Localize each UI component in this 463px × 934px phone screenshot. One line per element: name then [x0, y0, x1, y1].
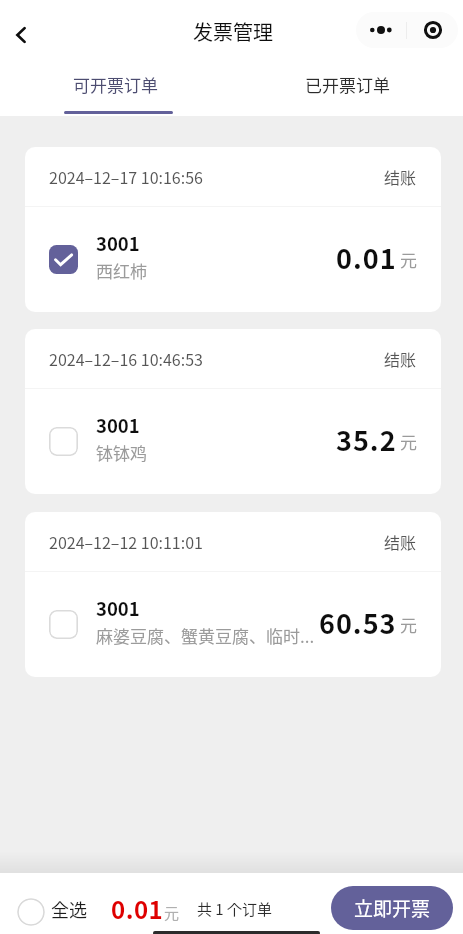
button[interactable]: Close mini program [407, 12, 458, 48]
staticText: 2024–12–12 10:11:01 [49, 530, 203, 553]
staticText: 共 1 个订单 [197, 898, 273, 920]
staticText: 全选 [51, 896, 87, 922]
staticText: 0.01 [336, 238, 397, 277]
button[interactable]: Select order [49, 427, 78, 456]
button[interactable]: 2024–12–17 10:16:56 [25, 147, 441, 312]
staticText: 结账 [384, 347, 417, 370]
button[interactable]: Select order [49, 610, 78, 639]
staticText: 3001 [96, 412, 140, 439]
staticText: 已开票订单 [305, 72, 390, 97]
button[interactable]: 可开票订单 [0, 62, 231, 116]
staticText: 0.01 [111, 891, 164, 926]
staticText: 结账 [384, 165, 417, 188]
staticText: 元 [164, 902, 180, 924]
button[interactable]: More options [356, 12, 406, 48]
button[interactable]: 2024–12–12 10:11:01 [25, 512, 441, 677]
staticText: 2024–12–16 10:46:53 [49, 347, 203, 370]
staticText: 可开票订单 [73, 72, 158, 97]
staticText: 2024–12–17 10:16:56 [49, 165, 203, 188]
staticText: 3001 [96, 230, 140, 257]
staticText: 钵钵鸡 [96, 440, 147, 465]
button[interactable]: 2024–12–16 10:46:53 [25, 329, 441, 494]
staticText: 元 [400, 612, 417, 637]
staticText: 发票管理 [193, 17, 273, 46]
staticText: 35.2 [336, 420, 397, 459]
staticText: 元 [400, 247, 417, 272]
staticText: 麻婆豆腐、蟹黄豆腐、临时... [96, 623, 315, 648]
button[interactable]: Back [2, 16, 38, 52]
staticText: 3001 [96, 595, 140, 622]
staticText: 元 [400, 429, 417, 454]
button[interactable]: Select order [49, 245, 78, 274]
button[interactable]: 已开票订单 [231, 62, 463, 116]
button[interactable]: Select all [17, 898, 45, 926]
staticText: 60.53 [319, 603, 397, 642]
staticText: 立即开票 [354, 894, 431, 922]
button[interactable]: 立即开票 [331, 886, 453, 930]
staticText: 结账 [384, 530, 417, 553]
staticText: 西红柿 [96, 258, 147, 283]
